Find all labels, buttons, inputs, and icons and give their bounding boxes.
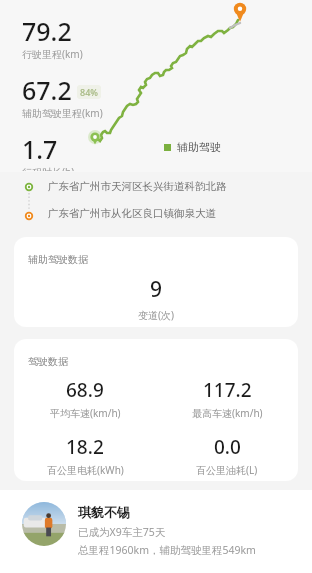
staticText: 67.2 xyxy=(22,73,72,107)
staticText: 平均车速(km/h) xyxy=(50,406,121,420)
staticText: 行驶里程(km) xyxy=(22,47,83,61)
button[interactable]: 辅助驾驶数据 xyxy=(14,237,298,327)
staticText: 总里程1960km，辅助驾驶里程549km xyxy=(78,543,256,557)
staticText: 驾驶数据 xyxy=(28,355,68,368)
staticText: 68.9 xyxy=(66,377,104,403)
staticText: 1.7 xyxy=(22,132,58,166)
staticText: 辅助驾驶数据 xyxy=(28,253,88,266)
staticText: 117.2 xyxy=(203,377,252,403)
staticText: 广东省广州市天河区长兴街道科韵北路 xyxy=(48,180,227,193)
staticText: 广东省广州市从化区良口镇御泉大道 xyxy=(48,207,216,220)
staticText: 百公里油耗(L) xyxy=(196,463,258,477)
staticText: 已成为X9车主75天 xyxy=(78,525,166,539)
staticText: 9 xyxy=(150,275,163,304)
staticText: 辅助驾驶 xyxy=(177,140,221,154)
staticText: 百公里电耗(kWh) xyxy=(47,463,124,477)
staticText: 0.0 xyxy=(214,434,241,460)
staticText: 变道(次) xyxy=(138,308,174,322)
staticText: 琪貌不锡 xyxy=(78,504,130,520)
button[interactable]: 驾驶数据 xyxy=(14,339,298,481)
staticText: 18.2 xyxy=(66,434,104,460)
staticText: 辅助驾驶里程(km) xyxy=(22,106,103,120)
staticText: 84% xyxy=(80,86,98,98)
button[interactable]: 广东省广州市天河区长兴街道科韵北路 xyxy=(0,172,312,234)
button[interactable]: 琪貌不锡 xyxy=(0,490,312,573)
staticText: 79.2 xyxy=(22,14,72,48)
staticText: 最高车速(km/h) xyxy=(192,406,263,420)
staticText: 行程时长(h) xyxy=(22,165,75,171)
